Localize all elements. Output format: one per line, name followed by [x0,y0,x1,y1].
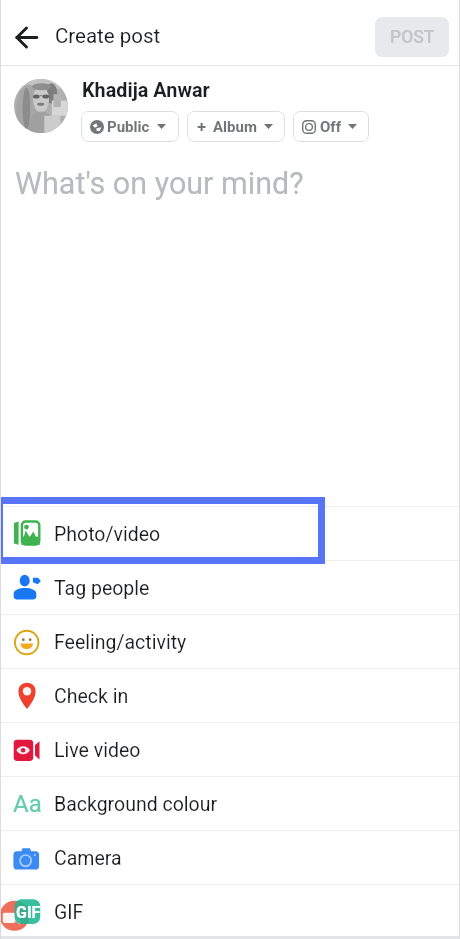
staticText: Create post [55,24,161,48]
staticText: Feeling/activity [54,631,187,654]
staticText: GIF [16,903,41,922]
staticText: Album [213,118,257,136]
button[interactable]: Camera [0,831,460,885]
staticText: Tag people [54,577,150,600]
button[interactable]: Live video [0,723,460,777]
button[interactable]: Tag people [0,561,460,615]
button[interactable]: Album [187,111,285,142]
staticText: Khadija Anwar [82,79,210,102]
button[interactable]: Back [9,20,44,55]
button[interactable]: Aa [0,777,460,831]
staticText: Aa [13,790,41,818]
button[interactable]: Off [293,111,369,142]
button[interactable]: GIF [0,885,460,939]
button[interactable]: Photo/video [0,507,460,561]
staticText: Background colour [54,793,218,816]
staticText: Camera [54,847,122,870]
staticText: Photo/video [54,523,161,546]
staticText: Public [107,118,150,136]
staticText: What's on your mind? [15,166,304,202]
button[interactable]: Create post [55,24,161,48]
button[interactable]: POST [375,17,449,57]
button[interactable]: Public [81,111,179,142]
staticText: Off [320,118,342,136]
staticText: Live video [54,739,141,762]
staticText: GIF [54,901,84,924]
staticText: POST [390,27,435,48]
button[interactable]: Feeling/activity [0,615,460,669]
staticText: Check in [54,685,129,708]
button[interactable]: Check in [0,669,460,723]
